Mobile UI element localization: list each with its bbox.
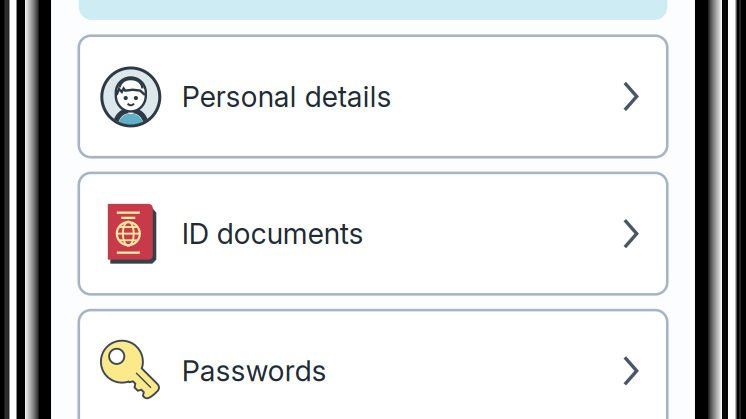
staticText: Personal details: [182, 79, 392, 114]
button[interactable]: Personal details: [79, 36, 667, 157]
staticText: Passwords: [182, 353, 327, 388]
button[interactable]: Passwords: [79, 310, 667, 419]
button[interactable]: ID documents: [79, 173, 667, 294]
staticText: ID documents: [182, 216, 364, 251]
